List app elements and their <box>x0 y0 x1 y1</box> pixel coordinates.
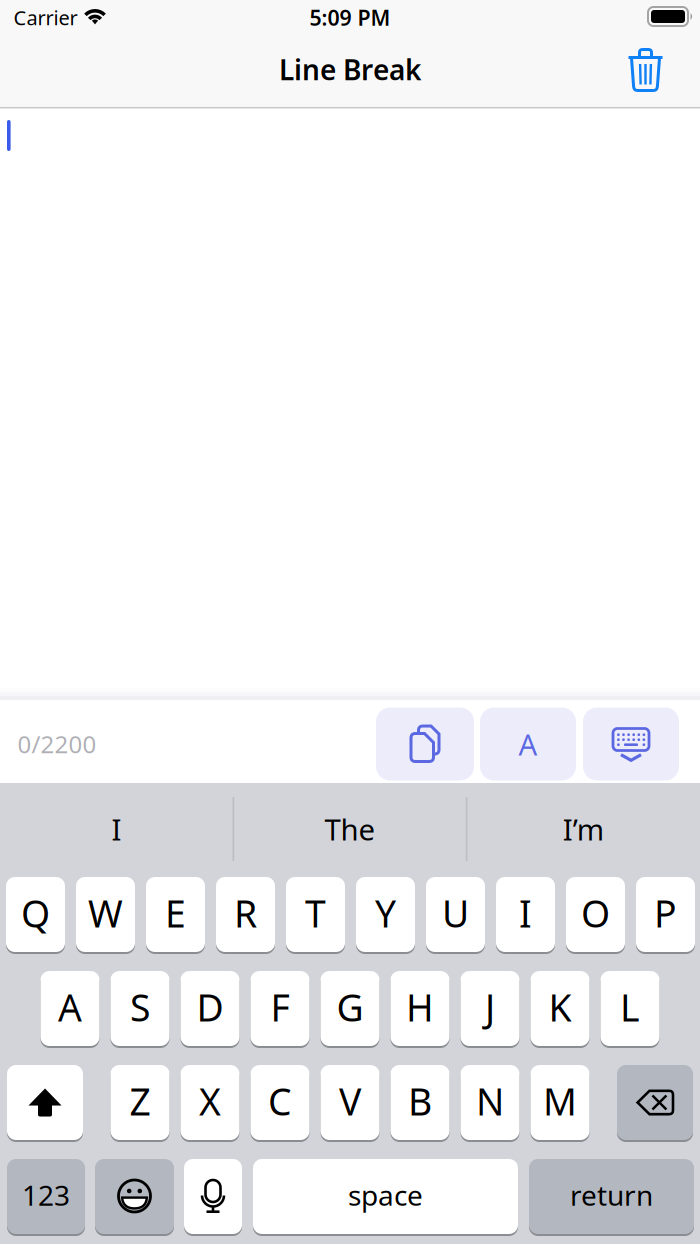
button[interactable]: F <box>250 970 309 1047</box>
button[interactable]: space <box>253 1158 518 1235</box>
button[interactable]: G <box>320 970 379 1047</box>
button[interactable] <box>7 1064 83 1141</box>
button[interactable]: Q <box>6 876 65 953</box>
staticText: I <box>519 888 532 938</box>
button[interactable]: B <box>390 1064 449 1141</box>
button[interactable]: R <box>216 876 275 953</box>
button[interactable]: C <box>250 1064 309 1141</box>
staticText: B <box>408 1076 432 1126</box>
staticText: G <box>336 982 363 1032</box>
button[interactable]: I <box>27 794 207 864</box>
staticText: I’m <box>563 809 604 848</box>
staticText: P <box>654 888 677 938</box>
staticText: 0/2200 <box>17 728 96 760</box>
button[interactable]: J <box>460 970 519 1047</box>
button[interactable]: Z <box>110 1064 169 1141</box>
staticText: Carrier <box>13 4 77 31</box>
staticText: W <box>88 888 123 938</box>
button[interactable]: Y <box>356 876 415 953</box>
staticText: 5:09 PM <box>309 3 390 32</box>
button[interactable]: H <box>390 970 449 1047</box>
staticText: T <box>305 888 326 938</box>
button[interactable]: V <box>320 1064 379 1141</box>
button[interactable]: I <box>496 876 555 953</box>
staticText: F <box>270 982 289 1032</box>
button[interactable]: O <box>566 876 625 953</box>
staticText: U <box>442 888 469 938</box>
button[interactable]: L <box>600 970 659 1047</box>
button[interactable]: S <box>110 970 169 1047</box>
button[interactable]: N <box>460 1064 519 1141</box>
button[interactable] <box>583 707 679 780</box>
button[interactable]: A <box>480 707 576 780</box>
staticText: A <box>518 724 537 763</box>
button[interactable] <box>184 1158 242 1235</box>
staticText: R <box>234 888 257 938</box>
button[interactable]: A <box>40 970 99 1047</box>
button[interactable] <box>617 43 673 97</box>
staticText: V <box>339 1076 361 1126</box>
staticText: space <box>348 1176 423 1214</box>
button[interactable]: K <box>530 970 589 1047</box>
staticText: K <box>548 982 571 1032</box>
button[interactable]: U <box>426 876 485 953</box>
staticText: N <box>476 1076 504 1126</box>
button[interactable] <box>376 707 474 780</box>
staticText: X <box>199 1076 221 1126</box>
button[interactable]: M <box>530 1064 589 1141</box>
staticText: Line Break <box>279 51 421 88</box>
button[interactable] <box>95 1158 174 1235</box>
button[interactable]: E <box>146 876 205 953</box>
staticText: J <box>485 982 495 1032</box>
button[interactable]: W <box>76 876 135 953</box>
button[interactable]: I’m <box>493 794 673 864</box>
button[interactable]: return <box>529 1158 694 1235</box>
staticText: M <box>543 1076 577 1126</box>
button[interactable]: X <box>180 1064 239 1141</box>
staticText: 123 <box>22 1176 70 1214</box>
staticText: D <box>196 982 223 1032</box>
staticText: A <box>58 982 82 1032</box>
staticText: return <box>570 1176 653 1214</box>
button[interactable]: P <box>636 876 695 953</box>
button[interactable]: The <box>260 794 440 864</box>
staticText: H <box>406 982 434 1032</box>
staticText: The <box>324 809 375 848</box>
staticText: O <box>581 888 610 938</box>
button[interactable]: T <box>286 876 345 953</box>
staticText: Q <box>21 888 50 938</box>
staticText: Y <box>375 888 396 938</box>
button[interactable]: D <box>180 970 239 1047</box>
button[interactable]: 123 <box>7 1158 85 1235</box>
staticText: Z <box>129 1076 150 1126</box>
button[interactable] <box>617 1064 693 1141</box>
staticText: S <box>130 982 150 1032</box>
staticText: L <box>620 982 640 1032</box>
staticText: E <box>165 888 186 938</box>
staticText: C <box>268 1076 292 1126</box>
staticText: I <box>112 809 122 848</box>
